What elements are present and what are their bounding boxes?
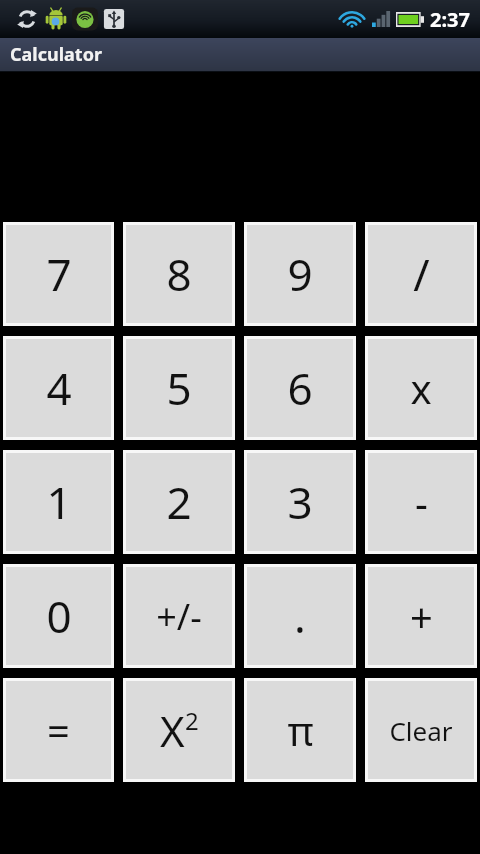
staticText: 2:37 [430,6,470,33]
staticText: . [294,586,306,646]
button[interactable]: 9 [247,225,353,323]
staticText: - [415,475,428,529]
button[interactable]: 5 [126,339,232,437]
button[interactable]: = [6,681,111,779]
staticText: Calculator [10,42,102,67]
staticText: 2 [166,472,192,532]
staticText: 8 [166,244,192,304]
button[interactable]: 7 [6,225,111,323]
button[interactable]: X [126,681,232,779]
button[interactable]: x [368,339,474,437]
staticText: x [410,361,432,415]
button[interactable]: 6 [247,339,353,437]
staticText: +/- [156,592,202,641]
staticText: 4 [46,358,72,418]
staticText: / [413,244,430,304]
button[interactable]: - [368,453,474,551]
staticText: 2 [185,704,199,737]
staticText: 9 [287,244,313,304]
staticText: 5 [166,358,192,418]
staticText: 1 [46,472,72,532]
staticText: + [410,589,433,643]
button[interactable]: + [368,567,474,665]
staticText: Clear [389,713,453,748]
button[interactable]: . [247,567,353,665]
staticText: 3 [287,472,313,532]
staticText: = [47,703,70,757]
button[interactable]: 0 [6,567,111,665]
staticText: 0 [46,586,72,646]
staticText: 6 [287,358,313,418]
button[interactable]: π [247,681,353,779]
staticText: π [287,703,314,757]
staticText: 7 [46,244,72,304]
button[interactable]: / [368,225,474,323]
button[interactable]: 8 [126,225,232,323]
button[interactable]: 4 [6,339,111,437]
button[interactable]: +/- [126,567,232,665]
button[interactable]: 3 [247,453,353,551]
button[interactable]: 2 [126,453,232,551]
button[interactable]: Clear [368,681,474,779]
staticText: X [160,702,185,759]
button[interactable]: 1 [6,453,111,551]
